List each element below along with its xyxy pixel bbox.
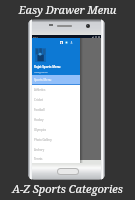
button[interactable]: Facebook bbox=[60, 41, 63, 44]
staticText: Archery bbox=[34, 148, 45, 152]
button[interactable]: Twitter bbox=[65, 41, 68, 44]
staticText: Category bbox=[34, 85, 47, 89]
button[interactable]: Tennis bbox=[32, 155, 80, 163]
button[interactable]: Account bbox=[70, 41, 73, 44]
staticText: rajat@gmail bbox=[34, 70, 48, 73]
staticText: Cricket bbox=[34, 98, 44, 102]
button[interactable]: Cricket bbox=[32, 95, 80, 105]
staticText: Category bbox=[34, 95, 47, 99]
staticText: Category bbox=[34, 145, 47, 149]
staticText: Category bbox=[34, 65, 47, 69]
staticText: Category bbox=[34, 125, 47, 129]
staticText: Rajat Sports Menu bbox=[34, 65, 61, 69]
staticText: Tennis bbox=[34, 157, 43, 161]
staticText: Football bbox=[34, 108, 45, 112]
staticText: Olympics bbox=[34, 128, 47, 132]
staticText: Sports News bbox=[34, 105, 52, 109]
staticText: A-Z Sports Categories bbox=[0, 181, 135, 196]
button[interactable]: Archery bbox=[32, 145, 80, 155]
staticText: Sports News bbox=[34, 75, 52, 79]
button[interactable]: Olympics bbox=[32, 125, 80, 135]
staticText: 9:41 bbox=[33, 35, 38, 38]
staticText: Sports News bbox=[34, 45, 52, 49]
button[interactable]: Hockey bbox=[32, 115, 80, 125]
button[interactable]: Football bbox=[32, 105, 80, 115]
staticText: Category bbox=[34, 115, 47, 119]
staticText: Sports Menu bbox=[34, 78, 52, 82]
staticText: Athletics bbox=[34, 88, 46, 92]
staticText: Category bbox=[34, 155, 47, 159]
staticText: Sports News bbox=[34, 135, 52, 139]
button[interactable]: Athletics bbox=[32, 85, 80, 95]
staticText: Easy Drawer Menu bbox=[0, 2, 135, 17]
staticText: Category bbox=[34, 55, 47, 59]
staticText: Hockey bbox=[34, 118, 44, 122]
button[interactable]: Photo Gallery bbox=[32, 135, 80, 145]
button[interactable]: Sports Menu bbox=[32, 75, 80, 85]
staticText: Photo Gallery bbox=[34, 138, 52, 142]
